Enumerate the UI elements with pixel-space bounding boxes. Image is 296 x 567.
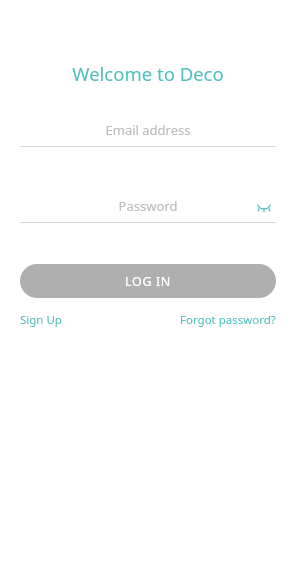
- button[interactable]: Forgot password?: [180, 309, 276, 331]
- staticText: Password: [20, 197, 276, 215]
- button[interactable]: Show password: [252, 194, 276, 218]
- button[interactable]: Password: [20, 194, 276, 218]
- staticText: Welcome to Deco: [0, 61, 296, 86]
- button[interactable]: LOG IN: [20, 264, 276, 298]
- staticText: LOG IN: [125, 273, 171, 290]
- button[interactable]: Sign Up: [20, 309, 62, 331]
- staticText: Forgot password?: [180, 312, 276, 328]
- staticText: Email address: [20, 121, 276, 139]
- staticText: Sign Up: [20, 312, 62, 328]
- button[interactable]: Email address: [20, 118, 276, 142]
